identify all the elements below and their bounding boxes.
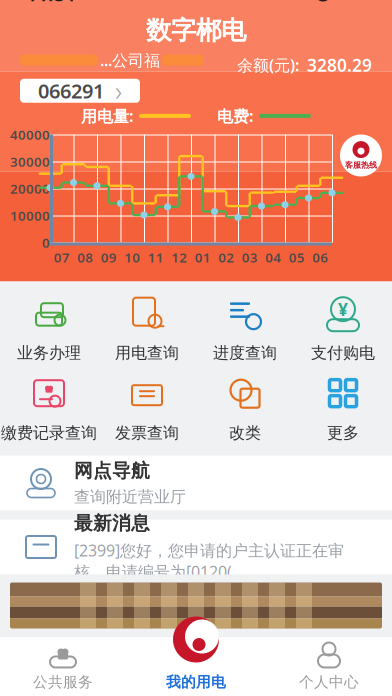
staticText: 20000: [10, 180, 50, 197]
staticText: 业务办理: [17, 343, 81, 363]
button[interactable]: 更多: [294, 367, 392, 447]
button[interactable]: 业务办理: [0, 287, 98, 367]
staticText: 11:51: [26, 0, 76, 7]
staticText: 余额(元):: [237, 54, 299, 76]
button[interactable]: 用电查询: [98, 287, 196, 367]
staticText: 12: [171, 248, 187, 266]
staticText: 03: [242, 248, 258, 266]
staticText: 电费:: [217, 105, 253, 126]
button[interactable]: 网点导航: [0, 455, 392, 510]
staticText: 查询附近营业厅: [74, 487, 186, 507]
button[interactable]: 客服热线: [340, 134, 382, 176]
button[interactable]: 我的用电: [141, 643, 251, 689]
staticText: 08: [77, 248, 93, 266]
staticText: [2399]您好，您申请的户主认证正在审核。申请编号为[0120(: [74, 540, 344, 582]
staticText: 用电查询: [115, 343, 179, 363]
staticText: 066291: [38, 77, 104, 104]
button[interactable]: 个人中心: [274, 643, 384, 689]
staticText: 最新消息: [74, 512, 150, 535]
staticText: 用电量:: [81, 105, 133, 126]
staticText: 进度查询: [213, 343, 277, 363]
staticText: 3280.29: [307, 54, 372, 77]
button[interactable]: 公共服务: [8, 643, 118, 689]
button[interactable]: 改类: [196, 367, 294, 447]
staticText: 支付购电: [311, 343, 375, 363]
staticText: 个人中心: [299, 673, 359, 691]
button[interactable]: 我的用电: [171, 614, 221, 664]
staticText: 发票查询: [115, 423, 179, 443]
staticText: 07: [54, 248, 70, 266]
button[interactable]: 进度查询: [196, 287, 294, 367]
button[interactable]: 缴费记录查询: [0, 367, 98, 447]
staticText: 09: [101, 248, 117, 266]
staticText: 01: [195, 248, 211, 266]
staticText: 客服热线: [345, 160, 377, 170]
staticText: 30000: [10, 153, 50, 170]
staticText: 我的用电: [166, 673, 226, 691]
button[interactable]: 066291: [20, 79, 140, 103]
staticText: 11: [148, 248, 164, 266]
staticText: 04: [265, 248, 281, 266]
staticText: 40000: [10, 126, 50, 143]
button[interactable]: ¥: [294, 287, 392, 367]
staticText: ¥: [338, 298, 348, 321]
staticText: 公共服务: [33, 673, 93, 691]
staticText: 更多: [327, 423, 359, 443]
staticText: ›: [115, 73, 122, 108]
staticText: ...公司福: [100, 49, 160, 71]
button[interactable]: 发票查询: [98, 367, 196, 447]
staticText: 02: [218, 248, 234, 266]
button[interactable]: 最新消息: [0, 519, 392, 574]
staticText: 06: [312, 248, 328, 266]
staticText: 10000: [10, 207, 50, 224]
staticText: 改类: [229, 423, 261, 443]
staticText: 10: [124, 248, 140, 266]
staticText: 0: [42, 234, 50, 251]
staticText: 网点导航: [74, 459, 150, 482]
staticText: 缴费记录查询: [1, 423, 97, 443]
staticText: 数字郴电: [146, 15, 246, 46]
staticText: 05: [289, 248, 305, 266]
